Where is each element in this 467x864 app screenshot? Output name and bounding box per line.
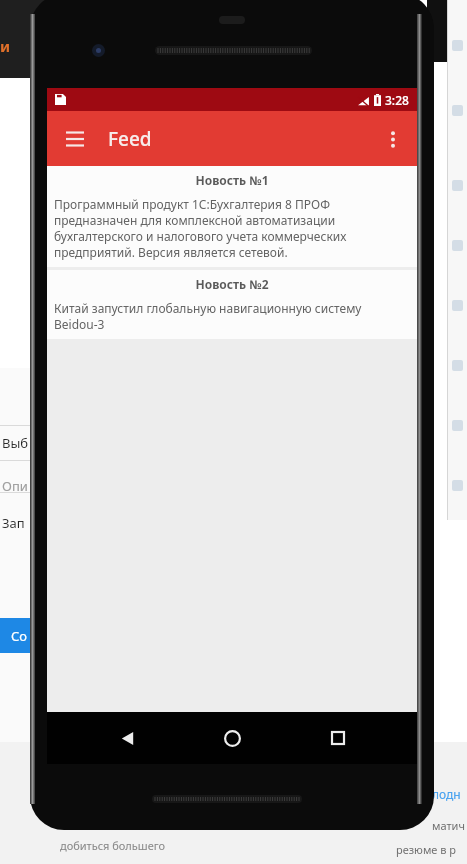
button[interactable]: Back [101,712,153,764]
staticText: Выб [2,434,29,452]
button[interactable]: Home [206,712,258,764]
staticText: лодн [432,786,461,802]
staticText: Feed [108,126,152,152]
staticText: Новость №1 [54,172,410,188]
staticText: и [0,36,11,56]
staticText: Зап [2,514,25,532]
staticText: Со [11,627,28,645]
staticText: добиться большего [60,838,165,853]
staticText: Новость №2 [54,276,410,292]
staticText: Опи [2,477,28,495]
button[interactable]: Open navigation drawer [57,121,93,157]
button[interactable]: More options [375,121,411,157]
staticText: резюме в р [396,842,457,857]
button[interactable]: Новость №2 [47,270,417,339]
button[interactable]: Новость №1 [47,166,417,267]
staticText: Китай запустил глобальную навигационную … [54,300,410,332]
staticText: 3:28 [385,92,409,108]
button[interactable]: Recent apps [312,712,364,764]
staticText: Программный продукт 1С:Бухгалтерия 8 ПРО… [54,196,410,260]
staticText: матич [432,818,465,833]
